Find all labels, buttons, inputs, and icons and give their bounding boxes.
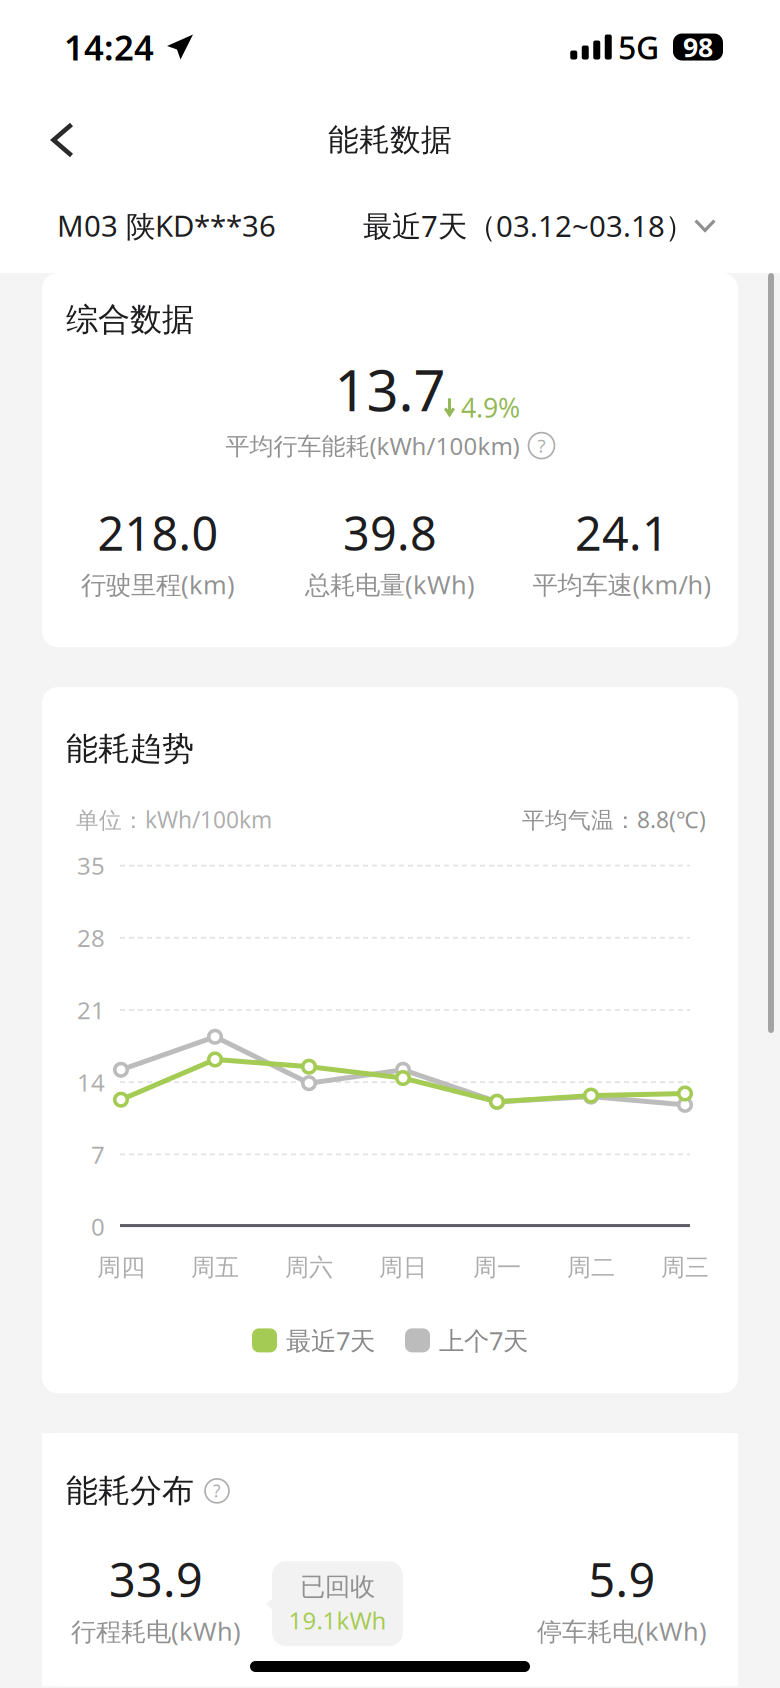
staticText: 28 [77,922,105,954]
staticText: ? [213,1479,221,1502]
button[interactable]: Back [0,96,110,184]
staticText: ? [537,433,545,458]
staticText: 综合数据 [66,300,194,339]
staticText: 周日 [379,1253,427,1282]
staticText: 98 [683,29,713,65]
staticText: 周四 [97,1253,145,1282]
staticText: 21 [77,994,105,1026]
staticText: 39.8 [343,501,437,563]
staticText: 上个7天 [439,1324,528,1357]
staticText: 19.1kWh [288,1604,386,1636]
staticText: 周六 [285,1253,333,1282]
staticText: 14 [77,1066,105,1098]
staticText: 5.9 [588,1548,655,1610]
staticText: 35 [77,850,105,881]
staticText: M03 陕KD***36 [57,206,276,245]
staticText: 0 [91,1211,105,1242]
staticText: 平均气温：8.8(℃) [522,804,706,835]
button[interactable]: 最近7天（03.12~03.18） [363,206,716,245]
staticText: 单位：kWh/100km [76,804,272,835]
staticText: 周五 [191,1253,239,1282]
staticText: 24.1 [575,501,669,563]
staticText: 行程耗电(kWh) [71,1614,241,1648]
staticText: 行驶里程(km) [81,567,235,601]
staticText: 13.7 [334,352,445,427]
staticText: 周一 [473,1253,521,1282]
staticText: 33.9 [109,1548,203,1610]
staticText: 已回收 [300,1571,375,1602]
staticText: 218.0 [97,501,218,563]
staticText: 14:24 [64,24,154,70]
staticText: 5G [618,26,659,68]
staticText: 最近7天 [286,1324,375,1357]
staticText: 能耗分布 [66,1471,194,1510]
staticText: 平均行车能耗(kWh/100km) [225,430,519,462]
staticText: 周二 [567,1253,615,1282]
staticText: 4.9% [461,390,520,425]
staticText: 7 [91,1138,105,1170]
staticText: 平均车速(km/h) [532,567,711,601]
staticText: 能耗数据 [328,121,452,159]
staticText: 最近7天（03.12~03.18） [363,206,694,245]
staticText: 停车耗电(kWh) [537,1614,707,1648]
staticText: 总耗电量(kWh) [305,567,475,601]
staticText: 能耗趋势 [66,729,194,768]
staticText: 周三 [661,1253,709,1282]
